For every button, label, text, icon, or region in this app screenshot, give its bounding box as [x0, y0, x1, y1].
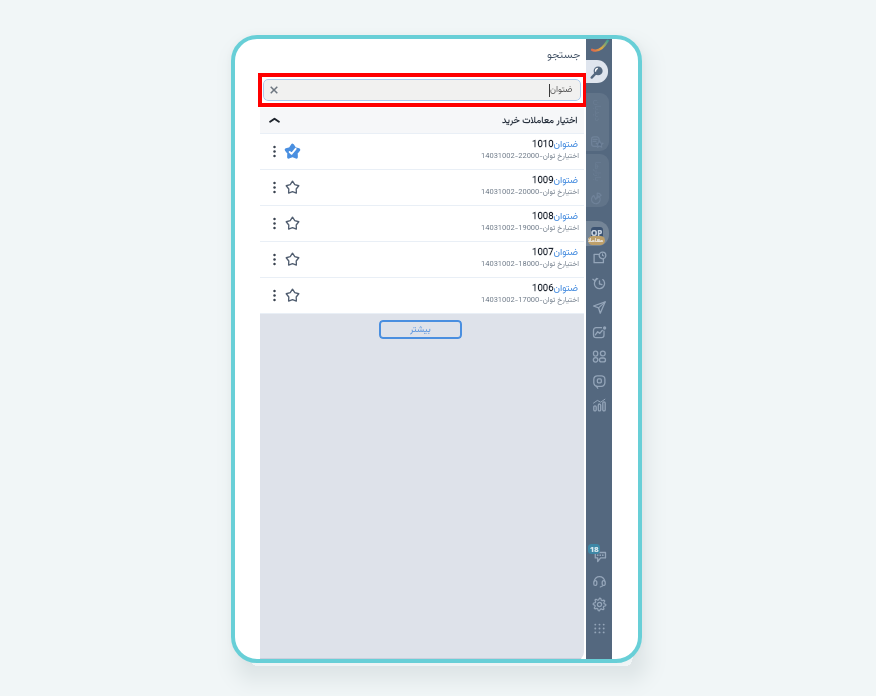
button[interactable]: Orders — [586, 295, 612, 320]
button[interactable]: More options — [268, 253, 281, 266]
button[interactable]: More — [586, 616, 612, 641]
button[interactable]: Widgets — [586, 369, 612, 394]
button[interactable]: Portfolio — [586, 246, 612, 271]
staticText: اختیارخ توان-20000-14031002 — [481, 186, 579, 198]
button[interactable]: More options — [268, 181, 281, 194]
button[interactable]: More options — [260, 170, 584, 205]
staticText: اختیار معاملات خرید — [502, 113, 578, 128]
staticText: ضتوان1008 — [532, 209, 579, 224]
button[interactable]: بیشتر — [379, 320, 462, 339]
button[interactable]: Reports — [586, 393, 612, 418]
button[interactable]: اختیار معاملات خرید — [260, 108, 584, 133]
staticText: ضتوان1009 — [532, 173, 579, 188]
button[interactable]: More options — [268, 289, 281, 302]
button[interactable]: Settings — [586, 592, 612, 617]
button[interactable]: ضتوان — [263, 79, 581, 101]
staticText: ضتوان — [550, 83, 573, 97]
staticText: اختیارخ توان-17000-14031002 — [481, 294, 579, 306]
staticText: اختیارخ توان-22000-14031002 — [481, 150, 579, 162]
button[interactable]: More options — [268, 145, 281, 158]
button[interactable]: Search — [586, 60, 608, 83]
button[interactable]: Clear — [270, 86, 278, 94]
staticText: اختیارخ توان-19000-14031002 — [481, 222, 579, 234]
button[interactable]: Messages — [586, 543, 612, 568]
staticText: بیشتر — [410, 323, 431, 337]
button[interactable]: More options — [260, 206, 584, 241]
button[interactable]: More options — [260, 242, 584, 277]
staticText: اختیارخ توان-18000-14031002 — [481, 258, 579, 270]
staticText: ضتوان1010 — [532, 137, 579, 152]
button[interactable]: More options — [260, 134, 584, 169]
button[interactable]: Support — [586, 569, 612, 594]
button[interactable]: More options — [268, 217, 281, 230]
staticText: 18 — [590, 544, 599, 554]
button[interactable]: Analytics — [586, 320, 612, 345]
staticText: معاملات — [588, 236, 605, 245]
staticText: OPT — [591, 227, 603, 237]
staticText: ضتوان1006 — [532, 281, 579, 296]
staticText: ضتوان1007 — [532, 245, 579, 260]
button[interactable]: Favourite — [285, 180, 300, 195]
button[interactable]: دیدبان — [586, 93, 609, 151]
button[interactable]: Favourite — [285, 252, 300, 267]
button[interactable]: Favourite — [285, 216, 300, 231]
button[interactable]: Options market — [586, 221, 609, 246]
button[interactable]: بازارها — [586, 154, 609, 207]
button[interactable]: More options — [260, 278, 584, 313]
button[interactable]: History — [586, 271, 612, 296]
button[interactable]: Apps — [586, 344, 612, 369]
button[interactable]: Favourite — [285, 144, 300, 159]
staticText: جستجو — [547, 47, 581, 65]
button[interactable]: Favourite — [285, 288, 300, 303]
